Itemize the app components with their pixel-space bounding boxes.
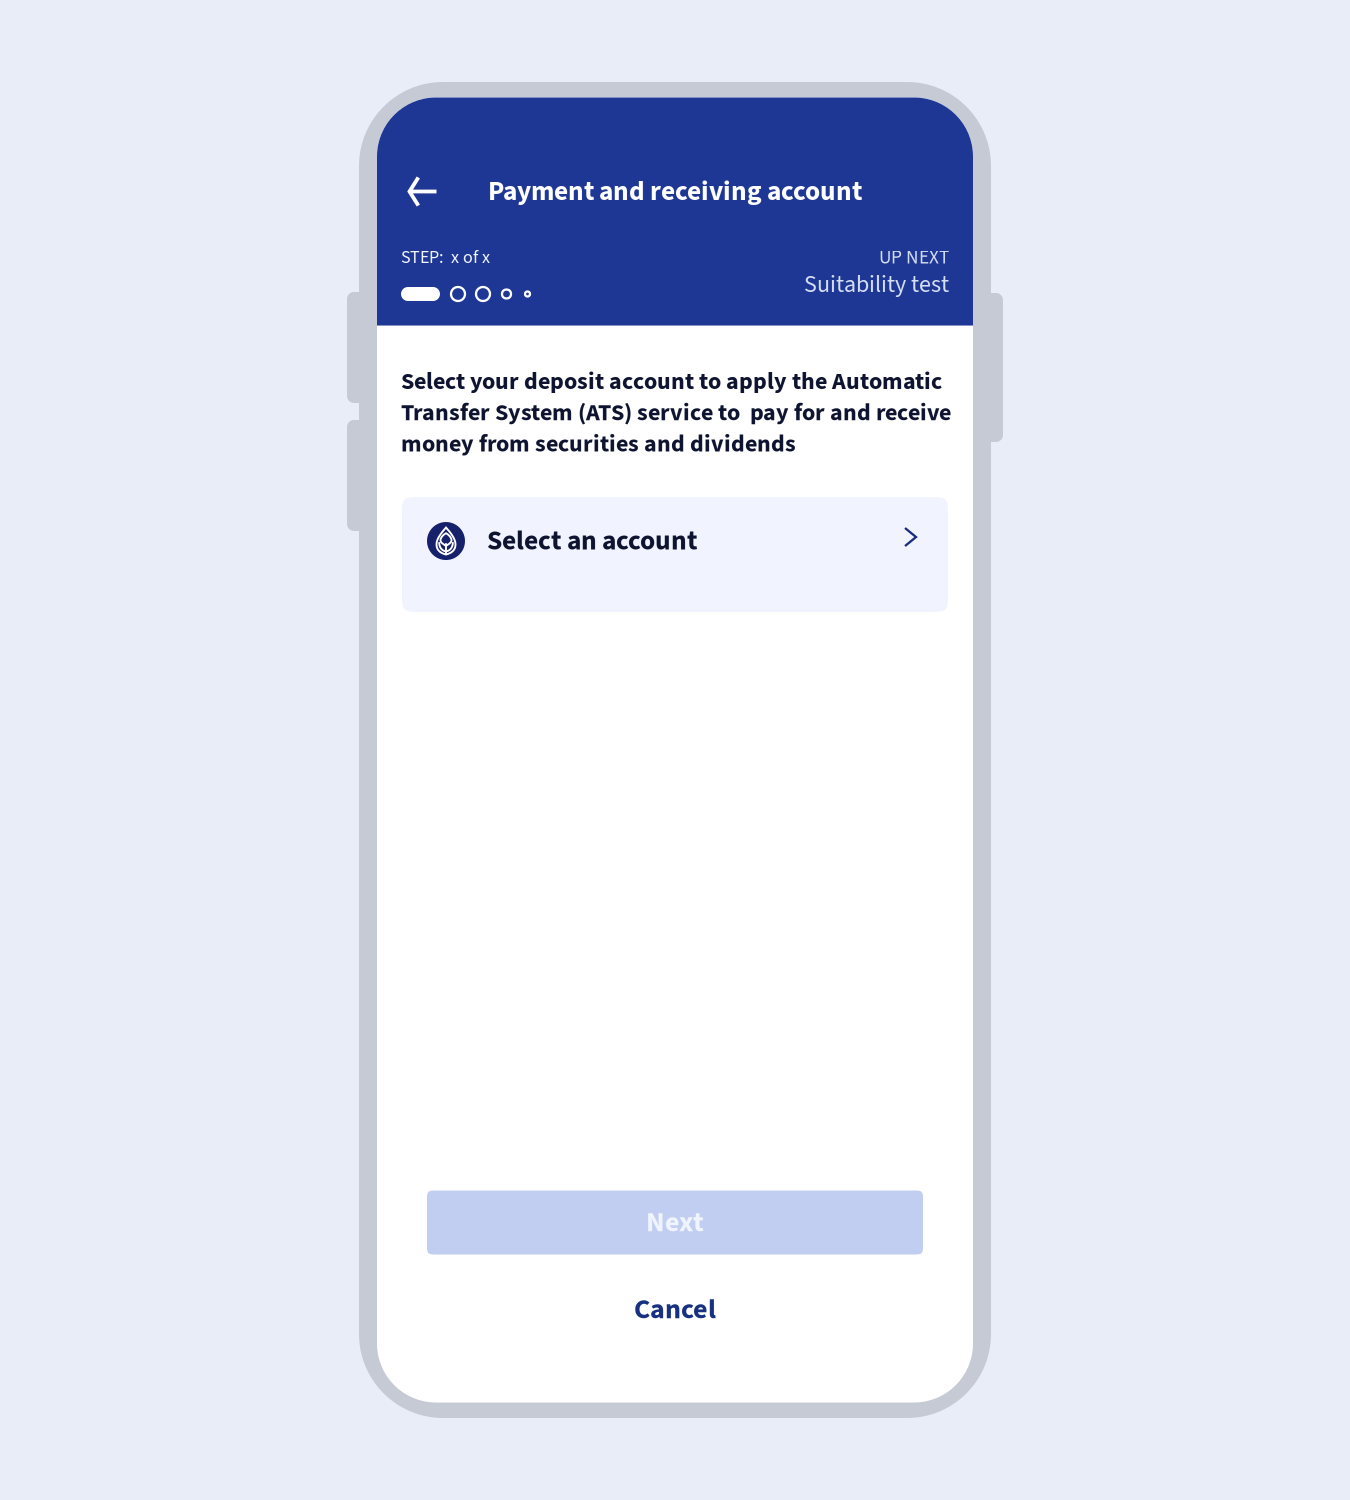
button[interactable]: Next	[427, 1190, 923, 1254]
staticText: Suitability test	[804, 267, 949, 302]
staticText: UP NEXT	[879, 244, 949, 271]
staticText: Next	[646, 1203, 704, 1242]
button[interactable]: Back	[394, 165, 452, 217]
staticText: Payment and receiving account	[488, 172, 862, 211]
staticText: Select your deposit account to apply the…	[401, 364, 951, 461]
button[interactable]: Cancel	[427, 1287, 923, 1331]
staticText: Select an account	[487, 521, 698, 561]
button[interactable]: Select an account	[402, 497, 948, 612]
staticText: STEP: x of x	[401, 245, 490, 270]
staticText: Cancel	[634, 1290, 716, 1329]
